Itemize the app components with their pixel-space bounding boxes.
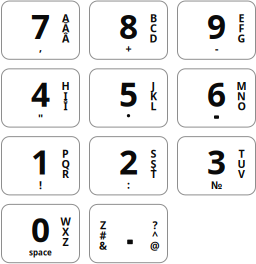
button[interactable]: Punctuation: Z # & period ? caret at (89, 204, 167, 263)
staticText: 6 (207, 72, 226, 116)
staticText: Ş (150, 157, 156, 171)
staticText: № (211, 178, 222, 192)
staticText: 8 (119, 4, 138, 48)
staticText: M (236, 79, 246, 93)
button[interactable]: 1 P Q R (1, 137, 79, 195)
staticText: P (62, 147, 69, 161)
staticText: & (99, 238, 107, 253)
staticText: T (150, 167, 156, 181)
staticText: T (238, 147, 244, 161)
staticText: # (99, 228, 106, 242)
staticText: D (149, 31, 157, 45)
staticText: : (127, 177, 130, 192)
staticText: N (237, 89, 246, 103)
staticText: L (150, 99, 156, 113)
button[interactable]: 2 S Ş T (89, 137, 167, 195)
button[interactable]: 8 B C D (89, 1, 167, 59)
staticText: F (238, 21, 244, 35)
staticText: 7 (31, 4, 50, 48)
staticText: , (39, 41, 42, 55)
staticText: ? (152, 218, 157, 232)
staticText: Q (61, 157, 69, 171)
staticText: V (238, 167, 245, 181)
staticText: 0 (31, 207, 50, 252)
staticText: ^ (152, 228, 158, 242)
staticText: G (237, 31, 245, 45)
staticText: + (125, 41, 131, 55)
staticText: " (38, 111, 43, 125)
staticText: K (150, 89, 157, 103)
staticText: X (62, 224, 69, 239)
staticText: J (151, 79, 155, 93)
staticText: W (60, 214, 70, 229)
staticText: R (62, 167, 69, 181)
staticText: Â (62, 31, 69, 45)
staticText: H (61, 79, 69, 93)
button[interactable]: 3 T U V (177, 137, 255, 195)
staticText: Ă (62, 21, 69, 35)
staticText: space (29, 247, 52, 258)
staticText: 9 (207, 4, 226, 48)
button[interactable]: 7 A Ă Â (1, 1, 79, 59)
staticText: Î (63, 99, 67, 113)
button[interactable]: 5 J K L (89, 69, 167, 127)
staticText: 2 (119, 139, 138, 184)
staticText: E (238, 11, 244, 25)
staticText: U (237, 157, 245, 171)
staticText: 5 (119, 72, 138, 116)
staticText: Z (62, 235, 68, 249)
staticText: ! (39, 178, 42, 192)
staticText: @ (150, 238, 160, 253)
staticText: S (150, 147, 156, 161)
staticText: 1 (31, 139, 50, 184)
staticText: 4 (31, 72, 50, 116)
staticText: I (63, 89, 67, 103)
button[interactable]: 9 E F G (177, 1, 255, 59)
button[interactable]: 6 M N O (177, 69, 255, 127)
staticText: Z (100, 218, 106, 232)
staticText: - (215, 41, 218, 55)
staticText: B (150, 11, 157, 25)
staticText: O (237, 99, 245, 113)
button[interactable]: 4 H I Î (1, 69, 79, 127)
button[interactable]: 0 W X Z space (1, 204, 79, 263)
staticText: A (62, 11, 69, 25)
staticText: 3 (207, 139, 226, 184)
staticText: C (150, 21, 157, 35)
